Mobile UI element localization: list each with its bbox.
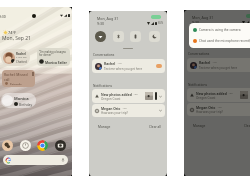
button[interactable]: “I'm making a lasagna for dinner” [37,48,70,66]
staticText: Megan Orio [196,105,216,109]
button[interactable]: Chat used the microphone recently [193,39,250,43]
staticText: Megan Orio [101,106,121,110]
staticText: Text me when you get here [199,66,238,70]
staticText: Mon, Aug 31 [97,16,119,21]
button[interactable]: New photos added [92,89,165,103]
staticText: 65% [158,21,164,25]
button[interactable]: New photos added [187,88,250,102]
staticText: 2 min ago [16,56,27,59]
button[interactable]: Messages [20,140,31,151]
staticText: New photos added [101,92,132,96]
button[interactable]: Flashlight [225,30,236,41]
staticText: New photos added [196,91,227,95]
button[interactable]: Rachel [187,58,250,72]
button[interactable]: Monica [1,93,36,108]
button[interactable]: Do not disturb [244,30,250,41]
staticText: Notifications [93,84,112,88]
staticText: Monica [14,96,29,101]
staticText: Rachel: Missed call [4,72,33,82]
button[interactable]: Rachel [1,49,30,66]
button[interactable]: Wi-Fi [95,31,106,42]
staticText: Notifications [188,83,207,87]
button[interactable]: Manage [193,124,206,128]
staticText: Oregon Coast [101,97,121,101]
button[interactable]: Do not disturb [149,31,160,42]
button[interactable]: Chrome [37,140,48,151]
staticText: Chatted [16,60,27,64]
staticText: · 4m [228,92,233,95]
button[interactable]: Wi-Fi [190,30,201,41]
staticText: Conversations [188,52,210,56]
button[interactable]: Camera is using the camera [193,28,250,32]
button[interactable]: Phone [2,140,13,151]
staticText: Text me when you get here [104,67,143,71]
staticText: Friends [10,82,22,85]
staticText: Rachel [16,52,26,56]
button[interactable]: Megan Orio [92,104,165,117]
button[interactable]: Flashlight [130,31,141,42]
button[interactable]: Camera [55,140,66,151]
button[interactable] [3,155,68,165]
staticText: 9:30 [97,21,105,26]
staticText: 9:30 [192,20,200,25]
staticText: Oregon Coast [196,96,216,100]
button[interactable]: Bluetooth [113,31,124,42]
button[interactable]: Clear all [149,125,162,129]
staticText: How was your trip? [101,111,128,115]
staticText: Monica Seiler [45,60,68,64]
staticText: Mon, Aug 31 [192,15,214,20]
staticText: Conversations [93,53,115,57]
button[interactable]: Clear all [244,124,250,128]
button[interactable]: Rachel [92,59,165,73]
staticText: Chat used the microphone recently [199,39,250,43]
button[interactable]: Rachel: Missed call [2,70,35,87]
staticText: Rachel [104,61,116,66]
button[interactable]: Bluetooth [208,30,219,41]
staticText: · 4m [133,93,138,96]
staticText: · 1m [212,61,217,64]
staticText: Birthday [19,102,33,106]
staticText: 74°F [8,30,17,35]
staticText: Rachel [199,60,211,65]
staticText: “I'm making a lasagna for dinner” [39,50,68,56]
staticText: · 7m [217,106,222,109]
staticText: · 7m [122,107,127,110]
button[interactable]: Megan Orio [187,103,250,116]
staticText: · 1m [117,62,122,65]
staticText: 9:30 [0,14,6,19]
staticText: Mon, Sep 21 [2,35,31,42]
staticText: Camera is using the camera [199,28,241,32]
staticText: How was your trip? [196,110,223,114]
button[interactable]: Manage [98,125,111,129]
